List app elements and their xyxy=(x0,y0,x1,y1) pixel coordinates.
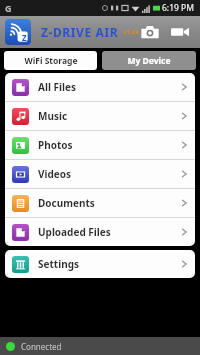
staticText: Videos xyxy=(38,167,72,181)
staticText: All Files xyxy=(38,80,76,94)
button[interactable]: Uploaded Files xyxy=(5,218,195,246)
staticText: Music xyxy=(38,109,68,123)
staticText: Z xyxy=(22,32,27,43)
button[interactable]: Settings xyxy=(5,250,195,278)
staticText: My Device xyxy=(127,55,171,67)
staticText: Photos xyxy=(38,138,73,152)
staticText: Connected xyxy=(21,341,62,352)
button[interactable]: Documents xyxy=(5,189,195,217)
button[interactable]: All Files xyxy=(5,73,195,101)
button[interactable]: Photos xyxy=(5,131,195,159)
staticText: v1.24 xyxy=(123,28,139,36)
button[interactable]: Music xyxy=(5,102,195,130)
button[interactable]: WiFi Storage xyxy=(4,51,97,70)
button[interactable]: Video xyxy=(169,21,191,43)
button[interactable]: My Device xyxy=(102,51,196,70)
staticText: 6:19 PM xyxy=(162,2,194,14)
staticText: G xyxy=(5,2,12,14)
button[interactable]: Z-Drive Air logo xyxy=(5,19,31,45)
staticText: Z-DRIVE AIR xyxy=(41,24,119,40)
staticText: Documents xyxy=(38,196,95,210)
staticText: Uploaded Files xyxy=(38,225,111,239)
staticText: Settings xyxy=(38,257,79,271)
button[interactable]: Camera xyxy=(139,21,161,43)
staticText: WiFi Storage xyxy=(24,55,78,67)
button[interactable]: Videos xyxy=(5,160,195,188)
